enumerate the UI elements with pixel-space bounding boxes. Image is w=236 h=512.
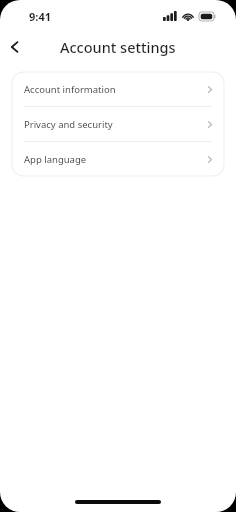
button[interactable]: App language xyxy=(12,142,224,176)
button[interactable]: Account information xyxy=(12,72,224,106)
staticText: App language xyxy=(24,153,208,166)
button[interactable]: Back xyxy=(0,33,28,61)
staticText: Account information xyxy=(24,83,208,96)
button[interactable]: Privacy and security xyxy=(12,107,224,141)
staticText: Privacy and security xyxy=(24,118,208,131)
staticText: 9:41 xyxy=(29,9,51,24)
staticText: Account settings xyxy=(60,37,176,57)
